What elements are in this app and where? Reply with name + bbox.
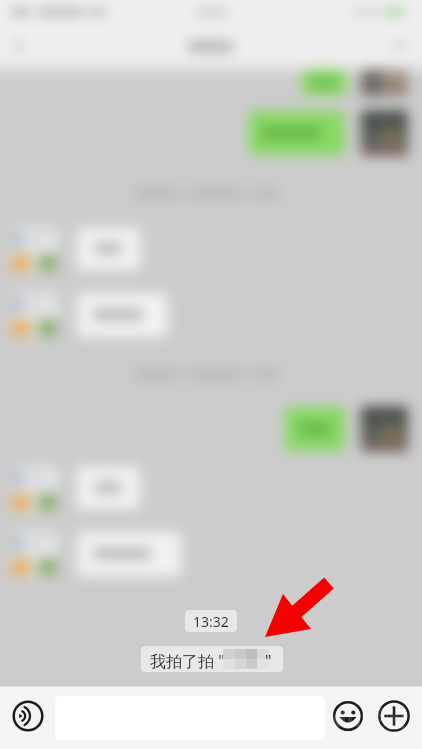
staticText: 13:32 xyxy=(193,612,229,631)
staticText: 我拍了拍 " xyxy=(150,650,225,672)
button[interactable]: Emoji xyxy=(332,700,364,732)
staticText: " xyxy=(265,650,272,672)
button[interactable]: More xyxy=(378,700,410,732)
staticText: Baidu经验 xyxy=(296,702,408,733)
button[interactable]: Voice input xyxy=(12,700,44,732)
